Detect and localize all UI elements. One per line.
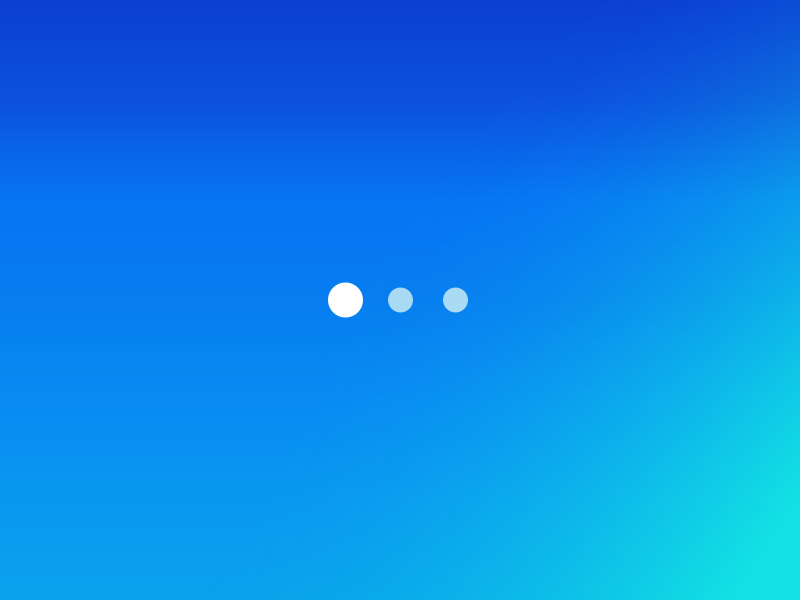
button[interactable]: Page 1, current page: [328, 282, 363, 317]
button[interactable]: Page 3: [443, 287, 468, 312]
button[interactable]: Page 2: [388, 287, 413, 312]
